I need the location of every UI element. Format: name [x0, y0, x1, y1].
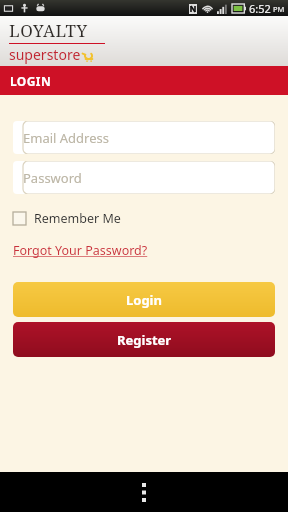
- staticText: LOGIN: [10, 73, 52, 89]
- staticText: superstore: [9, 45, 81, 64]
- staticText: Password: [23, 169, 82, 187]
- button[interactable]: Login: [13, 282, 275, 317]
- button[interactable]: Email Address: [13, 121, 275, 154]
- staticText: Register: [117, 331, 172, 349]
- button[interactable]: Remember Me: [13, 208, 121, 229]
- staticText: PM: [273, 4, 285, 14]
- staticText: 6:52: [249, 1, 271, 16]
- button[interactable]: Forgot Your Password?: [13, 242, 148, 259]
- button[interactable]: Register: [13, 322, 275, 357]
- button[interactable]: Password: [13, 161, 275, 194]
- staticText: Login: [126, 291, 162, 309]
- staticText: Remember Me: [34, 210, 121, 227]
- staticText: Email Address: [23, 129, 109, 147]
- button[interactable]: More options: [126, 474, 162, 510]
- staticText: LOYALTY: [9, 19, 88, 42]
